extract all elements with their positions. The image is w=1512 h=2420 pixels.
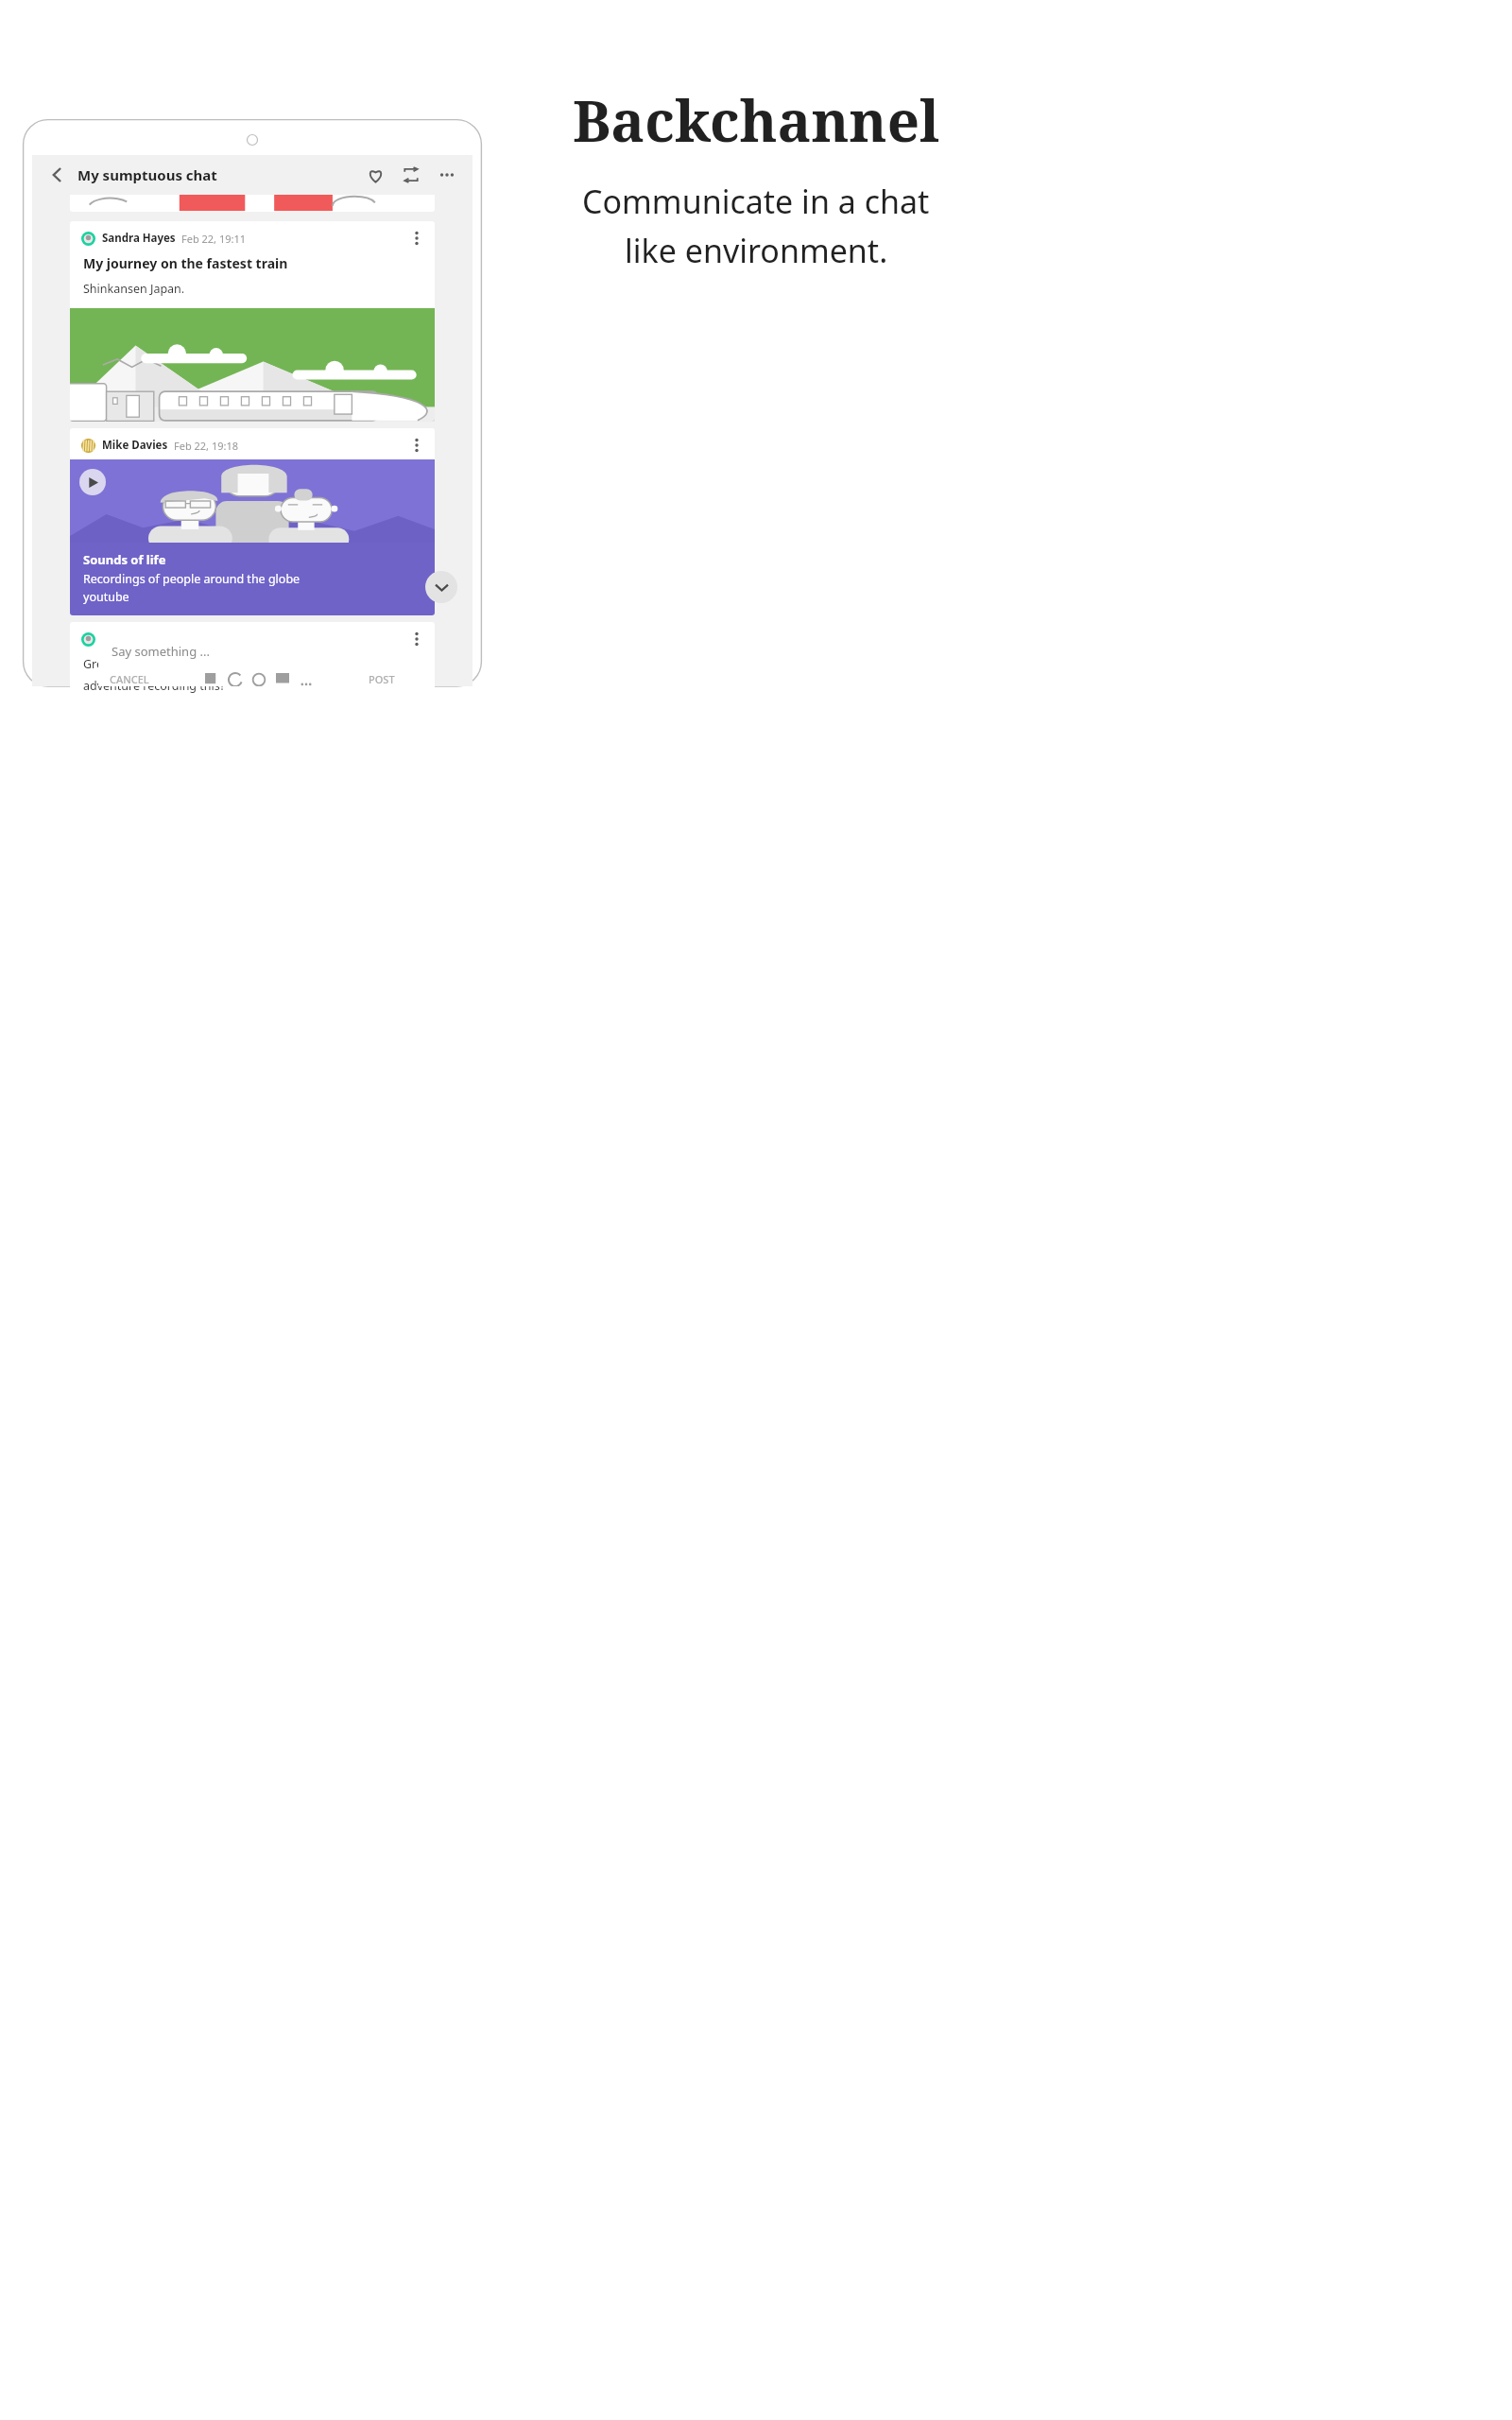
button[interactable]: Play video (79, 469, 106, 495)
staticText: POST (369, 672, 395, 686)
staticText: youtube (83, 589, 129, 605)
staticText: CANCEL (110, 672, 149, 686)
staticText: My sumptuous chat (77, 165, 217, 184)
button[interactable]: Sandra Hayes (70, 622, 435, 706)
button[interactable]: Message options (408, 437, 425, 454)
button[interactable]: Repost (399, 163, 423, 187)
button[interactable]: Mike Davies (70, 428, 435, 615)
staticText: Sandra Hayes (102, 231, 176, 246)
button[interactable]: Scroll to bottom (425, 571, 457, 603)
button[interactable]: Message options (408, 230, 425, 247)
staticText: Great video Mike! Must have had an amazi… (83, 656, 333, 672)
staticText: like environment. (625, 229, 888, 272)
button[interactable]: Say something ... (98, 626, 406, 686)
button[interactable] (70, 195, 435, 212)
button[interactable]: Back (45, 163, 70, 187)
staticText: adventure recording this? (83, 678, 226, 694)
staticText: Recordings of people around the globe (83, 571, 301, 587)
button[interactable]: Sandra Hayes (70, 221, 435, 422)
button[interactable]: More options (435, 163, 459, 187)
staticText: Mike Davies (102, 438, 168, 453)
staticText: My journey on the fastest train (83, 254, 288, 272)
button[interactable]: Message options (408, 631, 425, 648)
staticText: Communicate in a chat (582, 180, 930, 223)
staticText: Backchannel (573, 81, 940, 159)
staticText: Feb 22, 19:11 (181, 232, 247, 246)
staticText: Say something ... (112, 643, 210, 660)
button[interactable]: Like (363, 163, 387, 187)
staticText: Feb 22, 19:18 (174, 439, 239, 453)
staticText: Sounds of life (83, 551, 166, 568)
staticText: Shinkansen Japan. (83, 281, 185, 297)
